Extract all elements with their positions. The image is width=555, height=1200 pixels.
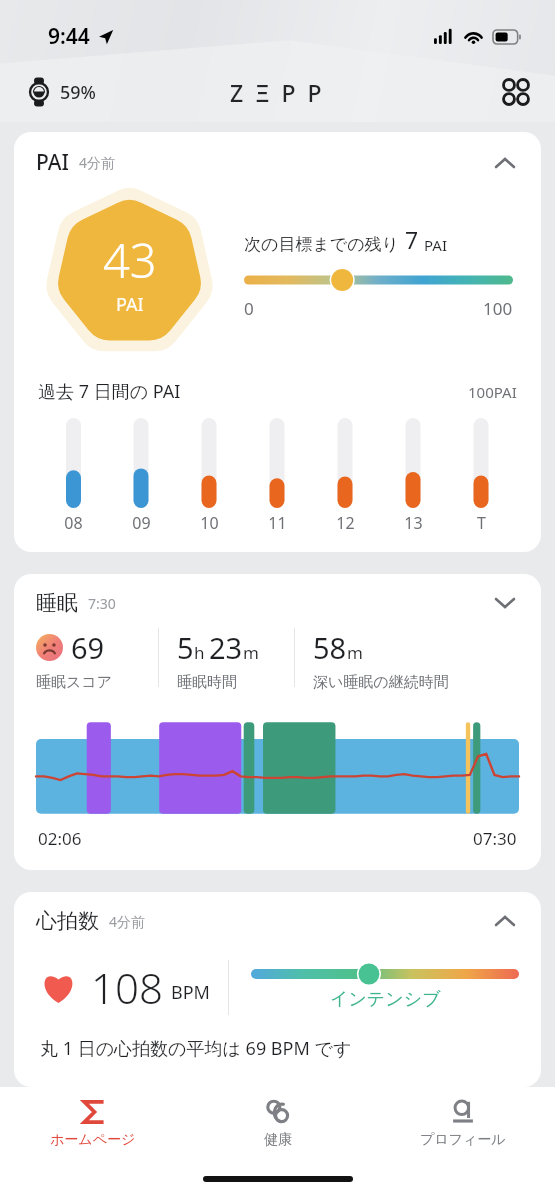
staticText: 69 [71, 628, 105, 667]
staticText: 100PAI [468, 382, 517, 402]
staticText: 深い睡眠の継続時間 [313, 673, 449, 692]
staticText: 07:30 [473, 827, 517, 850]
button[interactable]: 睡眠 [14, 574, 541, 870]
staticText: m [243, 641, 259, 664]
staticText: 丸 1 日の心拍数の平均は 69 BPM です [40, 1036, 352, 1061]
button[interactable]: Devices [497, 73, 535, 111]
staticText: Ζ Ξ Ρ Ρ [230, 77, 325, 108]
staticText: 23 [209, 628, 243, 667]
staticText: 10 [200, 512, 219, 534]
staticText: 5 [177, 628, 194, 667]
button[interactable]: Collapse [489, 909, 521, 933]
staticText: PAI [116, 292, 144, 317]
staticText: 4分前 [79, 153, 116, 172]
button[interactable]: PAI [14, 132, 541, 552]
button[interactable]: 健康 [185, 1087, 370, 1165]
staticText: 59% [60, 80, 96, 105]
staticText: 睡眠 [36, 590, 78, 616]
staticText: 09 [132, 512, 151, 534]
staticText: h [194, 641, 205, 664]
staticText: 健康 [264, 1131, 292, 1149]
staticText: 睡眠時間 [177, 673, 237, 692]
staticText: 12 [336, 512, 355, 534]
staticText: 過去 7 日間の PAI [38, 379, 181, 404]
button[interactable]: Expand [489, 591, 521, 615]
staticText: 13 [404, 512, 423, 534]
staticText: 108 [91, 959, 163, 1016]
staticText: BPM [171, 980, 210, 1005]
staticText: T [477, 512, 486, 534]
staticText: 睡眠スコア [36, 673, 113, 692]
staticText: PAI [36, 148, 69, 177]
button[interactable]: 59% [22, 75, 100, 109]
staticText: 58 [313, 628, 347, 667]
button[interactable]: ホームページ [0, 1087, 185, 1165]
button[interactable]: 心拍数 [14, 892, 541, 1087]
button[interactable]: Collapse [489, 151, 521, 175]
staticText: 43 [103, 228, 157, 292]
staticText: 4分前 [109, 912, 146, 931]
staticText: ホームページ [50, 1131, 136, 1149]
staticText: 11 [268, 512, 287, 534]
staticText: インテンシブ [330, 988, 441, 1011]
staticText: 0 [244, 297, 254, 320]
staticText: m [347, 641, 363, 664]
button[interactable]: プロフィール [370, 1087, 555, 1165]
staticText: 02:06 [38, 827, 82, 850]
staticText: プロフィール [420, 1131, 506, 1149]
staticText: 7:30 [88, 594, 116, 613]
staticText: 08 [64, 512, 83, 534]
staticText: 100 [483, 297, 513, 320]
staticText: PAI [424, 235, 447, 255]
staticText: 7 [405, 224, 419, 255]
staticText: 9:44 [48, 22, 90, 51]
staticText: 心拍数 [36, 908, 99, 934]
staticText: 次の目標までの残り [244, 234, 399, 255]
